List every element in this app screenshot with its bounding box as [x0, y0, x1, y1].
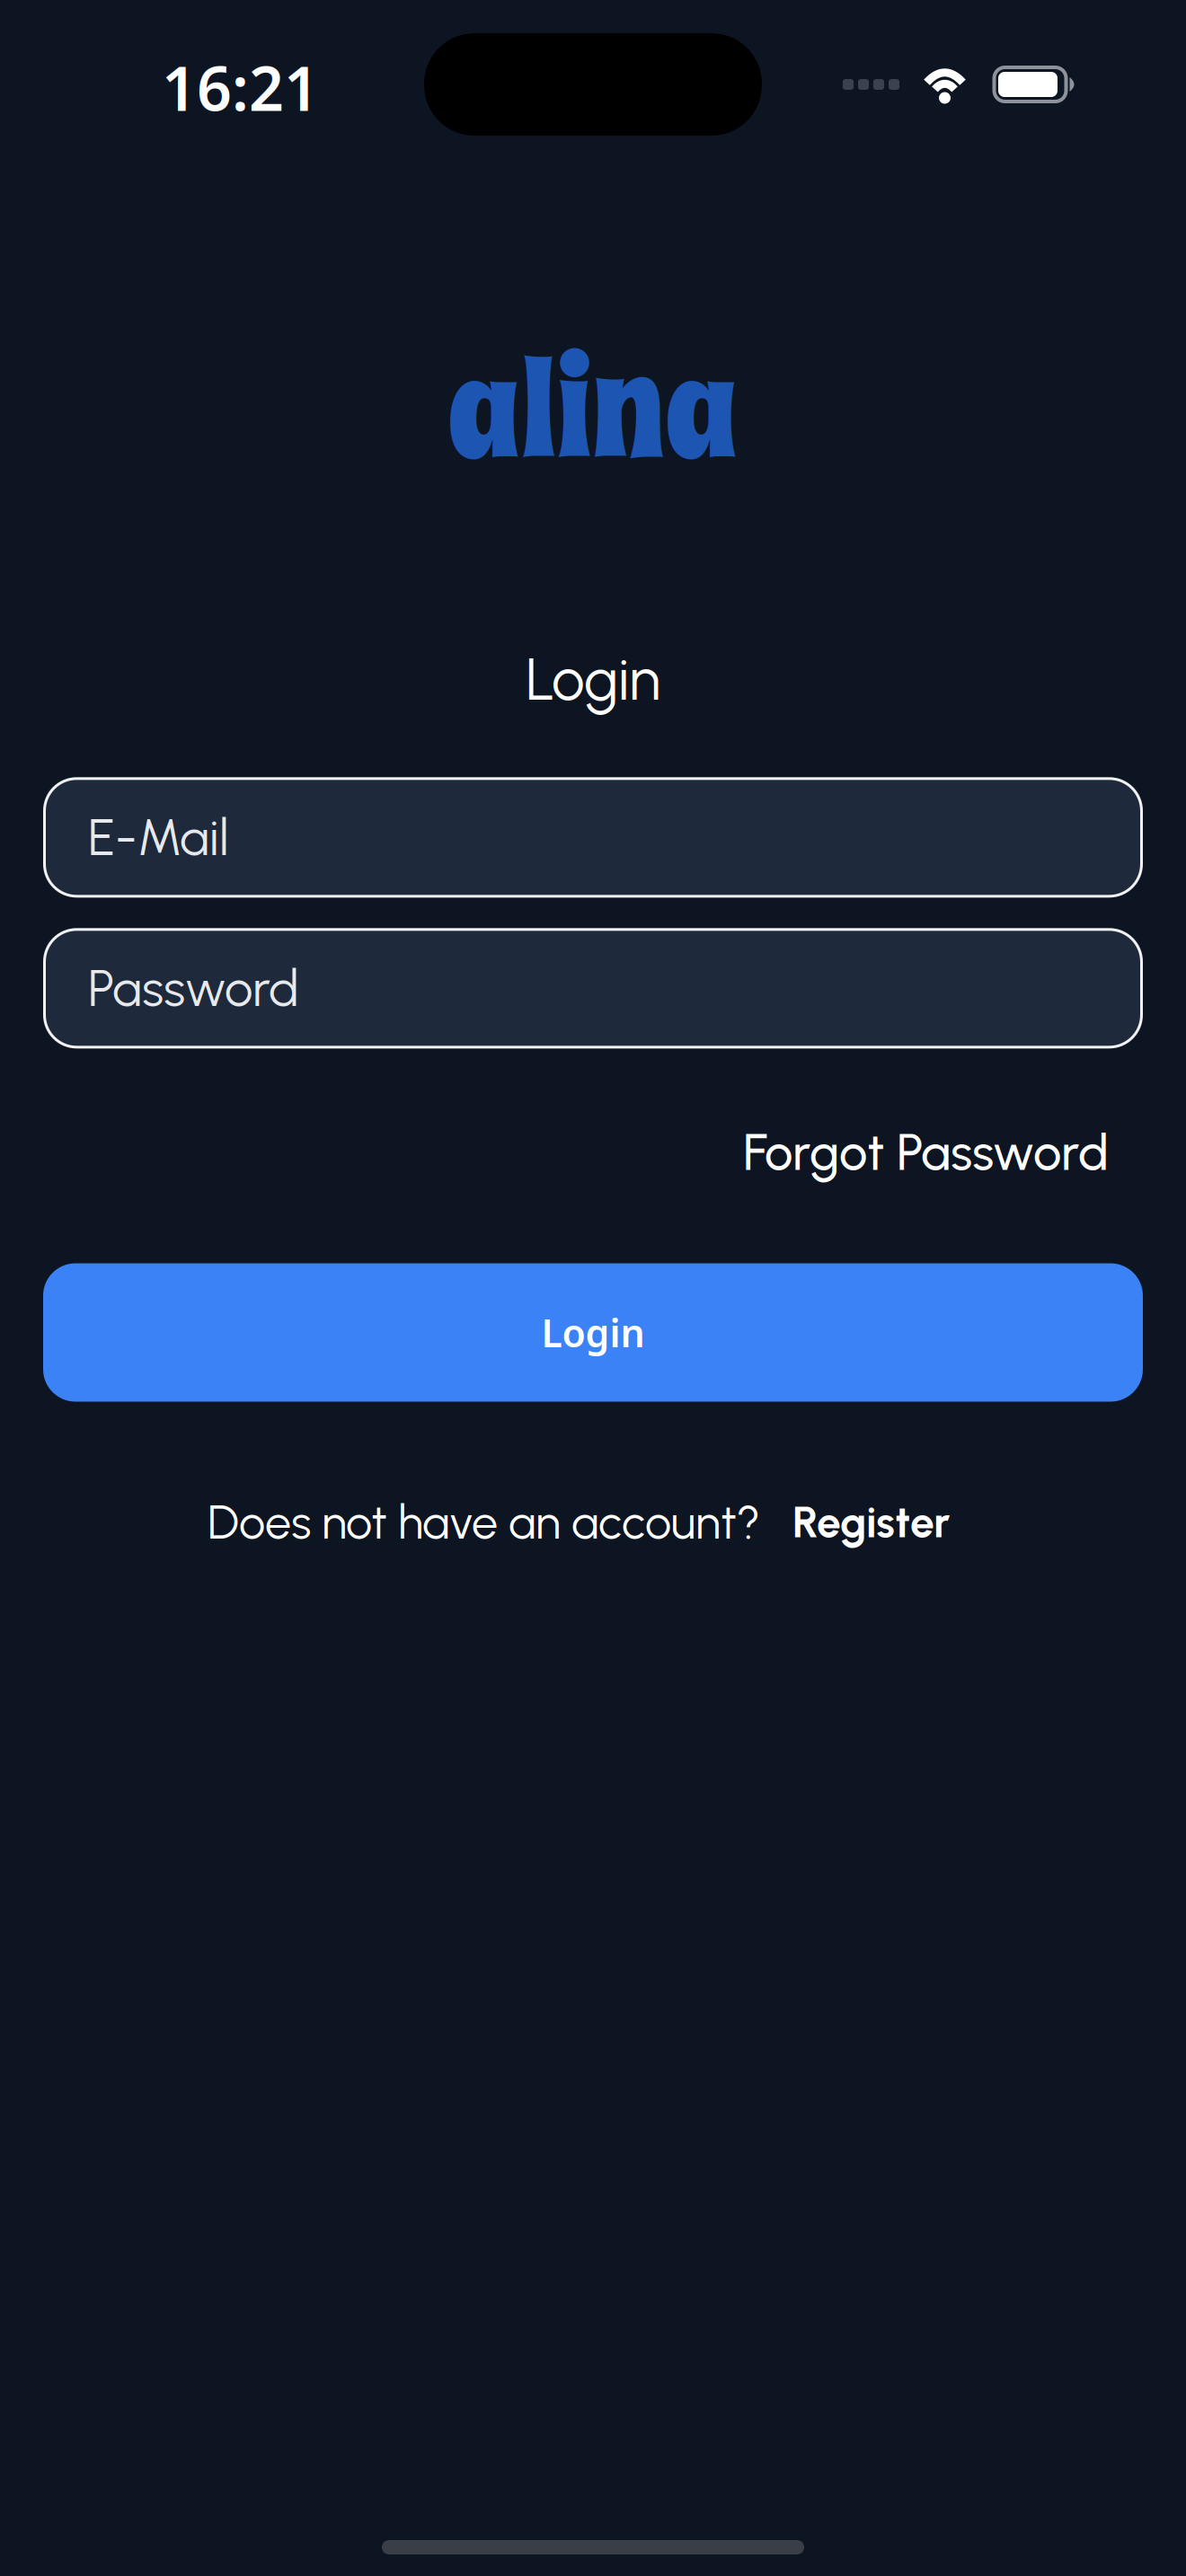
staticText: Does not have an account? — [208, 1494, 760, 1550]
button[interactable]: E-Mail — [43, 777, 1143, 898]
staticText: Password — [88, 958, 299, 1018]
staticText: Login — [526, 644, 660, 714]
button[interactable]: Register — [792, 1496, 950, 1548]
staticText: Login — [541, 1307, 645, 1358]
staticText: E-Mail — [88, 807, 229, 868]
button[interactable]: Forgot Password — [743, 1122, 1109, 1182]
staticText: Forgot Password — [743, 1122, 1109, 1182]
button[interactable]: Password — [43, 928, 1143, 1048]
staticText: alina — [447, 319, 739, 504]
staticText: Register — [792, 1496, 950, 1548]
staticText: 16:21 — [162, 47, 319, 128]
button[interactable]: Login — [43, 1263, 1143, 1402]
